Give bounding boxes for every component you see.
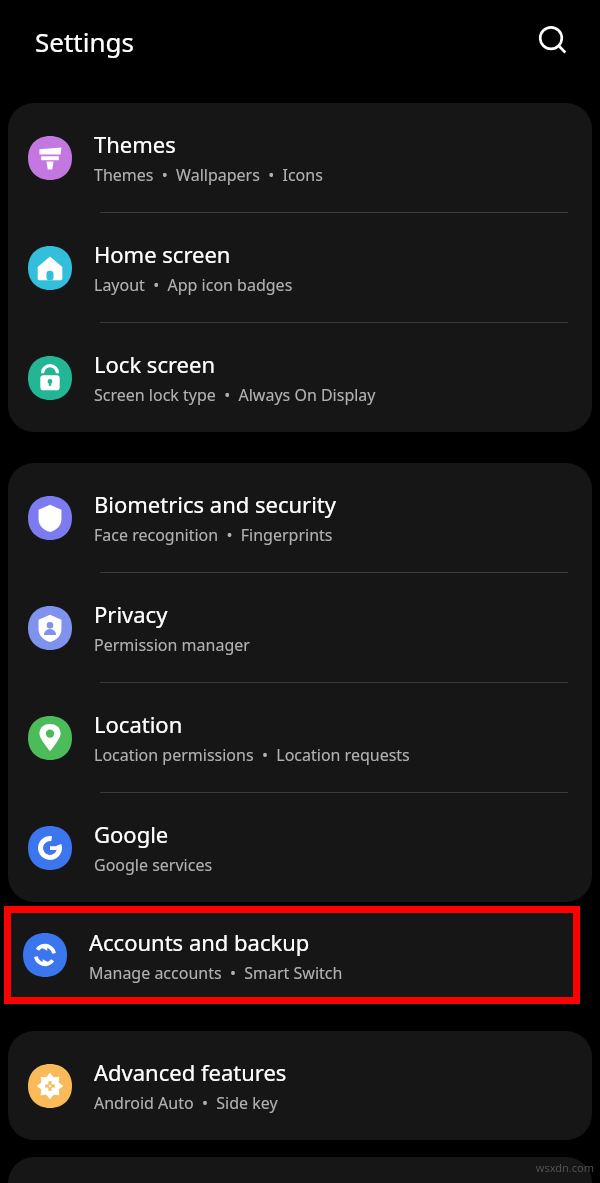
button[interactable]: Themes — [8, 103, 592, 212]
button[interactable]: Lock screen — [8, 323, 592, 432]
staticText: Permission manager — [94, 634, 250, 656]
staticText: Settings — [35, 24, 134, 59]
staticText: Manage accounts • Smart Switch — [89, 962, 343, 984]
staticText: Advanced features — [94, 1057, 287, 1087]
staticText: Screen lock type • Always On Display — [94, 384, 376, 406]
staticText: Location permissions • Location requests — [94, 744, 410, 766]
staticText: Location — [94, 709, 183, 739]
staticText: Google services — [94, 854, 213, 876]
staticText: wsxdn.com — [535, 1160, 594, 1175]
staticText: Biometrics and security — [94, 489, 337, 519]
staticText: Google — [94, 819, 169, 849]
staticText: Lock screen — [94, 349, 216, 379]
button[interactable]: Privacy — [8, 573, 592, 682]
button[interactable]: Location — [8, 683, 592, 792]
staticText: Layout • App icon badges — [94, 274, 293, 296]
staticText: Face recognition • Fingerprints — [94, 524, 333, 546]
staticText: Themes • Wallpapers • Icons — [94, 164, 323, 186]
button[interactable]: Advanced features — [8, 1031, 592, 1140]
staticText: Home screen — [94, 239, 231, 269]
button[interactable]: Home screen — [8, 213, 592, 322]
staticText: Accounts and backup — [89, 927, 310, 957]
button[interactable]: Search — [527, 17, 575, 65]
staticText: Privacy — [94, 599, 168, 629]
button[interactable] — [8, 1157, 592, 1183]
staticText: Android Auto • Side key — [94, 1092, 278, 1114]
staticText: Themes — [94, 129, 176, 159]
button[interactable]: Accounts and backup — [11, 913, 573, 997]
button[interactable]: Biometrics and security — [8, 463, 592, 572]
button[interactable]: Google — [8, 793, 592, 902]
